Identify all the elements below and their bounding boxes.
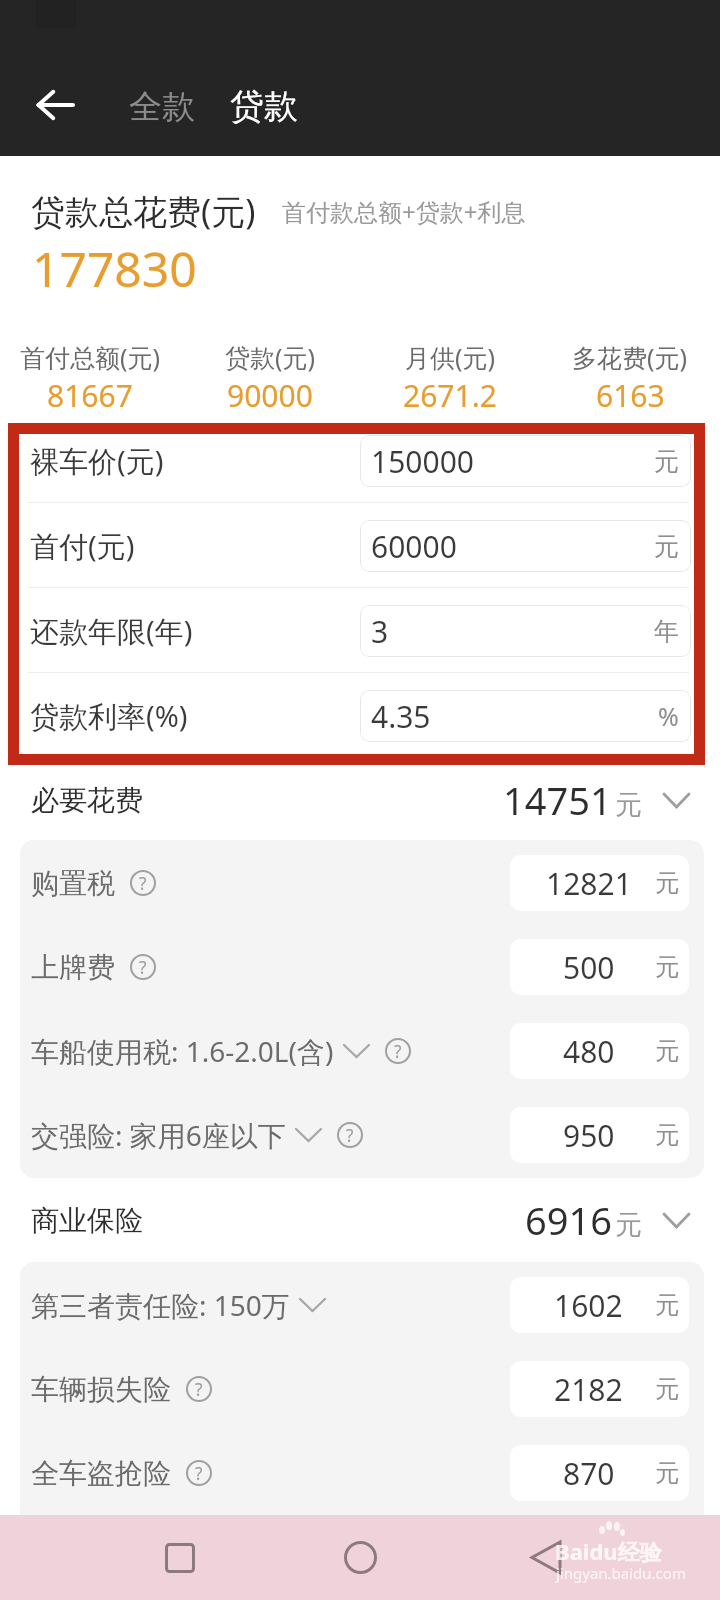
staticText: 首付(元) <box>30 526 135 566</box>
staticText: ? <box>394 1040 402 1063</box>
staticText: 1602 <box>554 1285 623 1326</box>
staticText: 870 <box>563 1453 615 1494</box>
button[interactable]: 950 <box>510 1107 689 1163</box>
staticText: 元 <box>655 1374 679 1404</box>
staticText: 12821 <box>546 863 632 904</box>
staticText: 2182 <box>554 1369 623 1410</box>
staticText: 元 <box>655 1036 679 1066</box>
staticText: 元 <box>655 868 679 898</box>
staticText: 贷款总花费(元) <box>31 188 256 234</box>
button[interactable]: Home <box>325 1515 395 1600</box>
staticText: 全款 <box>129 86 195 128</box>
button[interactable]: 1602 <box>510 1277 689 1333</box>
button[interactable]: 60000 <box>360 520 691 572</box>
staticText: 购置税 <box>31 866 115 901</box>
button[interactable]: 裸车价(元) <box>0 418 720 503</box>
button[interactable]: 第三者责任险: 150万 <box>20 1263 704 1347</box>
button[interactable]: 车船使用税: 1.6-2.0L(含) <box>20 1009 704 1093</box>
staticText: 元 <box>655 1458 679 1488</box>
button[interactable]: 贷款 <box>218 77 310 136</box>
staticText: 6916 <box>525 1194 612 1246</box>
button[interactable]: 购置税 <box>20 841 704 925</box>
staticText: ? <box>139 956 147 979</box>
staticText: ? <box>195 1462 203 1485</box>
button[interactable]: 必要花费 <box>0 758 720 842</box>
staticText: jingyan.baidu.com <box>556 1563 686 1583</box>
staticText: 60000 <box>371 526 457 567</box>
staticText: 贷款利率(%) <box>30 696 188 736</box>
button[interactable]: 贷款(元) <box>180 340 360 416</box>
staticText: 多花费(元) <box>572 340 688 374</box>
button[interactable]: Recents <box>145 1515 215 1600</box>
button[interactable]: 870 <box>510 1445 689 1501</box>
button[interactable]: 12821 <box>510 855 689 911</box>
button[interactable]: 500 <box>510 939 689 995</box>
staticText: 第三者责任险: 150万 <box>31 1286 290 1324</box>
staticText: 必要花费 <box>31 783 143 818</box>
staticText: 贷款 <box>230 85 298 128</box>
staticText: ? <box>195 1378 203 1401</box>
staticText: 14751 <box>503 774 612 826</box>
staticText: 交强险: 家用6座以下 <box>31 1116 286 1154</box>
staticText: 首付款总额+贷款+利息 <box>282 195 526 228</box>
button[interactable]: 2182 <box>510 1361 689 1417</box>
staticText: 全车盗抢险 <box>31 1456 171 1491</box>
button[interactable]: 150000 <box>360 435 691 487</box>
button[interactable]: 首付总额(元) <box>0 340 180 416</box>
staticText: 贷款(元) <box>225 340 316 374</box>
staticText: 元 <box>615 788 642 822</box>
staticText: 2671.2 <box>403 375 497 416</box>
button[interactable]: 3 <box>360 605 691 657</box>
staticText: ? <box>139 872 147 895</box>
button[interactable]: 首付(元) <box>0 503 720 588</box>
staticText: 81667 <box>47 375 133 416</box>
button[interactable]: 还款年限(年) <box>0 588 720 673</box>
button[interactable]: 商业保险 <box>0 1178 720 1262</box>
button[interactable]: 多花费(元) <box>540 340 720 416</box>
staticText: 元 <box>654 531 679 562</box>
button[interactable]: Back <box>20 70 90 140</box>
staticText: 商业保险 <box>31 1203 143 1238</box>
button[interactable]: 480 <box>510 1023 689 1079</box>
staticText: Baidu经验 <box>555 1536 662 1566</box>
staticText: 4.35 <box>371 696 431 737</box>
staticText: 177830 <box>32 236 197 301</box>
staticText: 150000 <box>371 441 474 482</box>
staticText: 950 <box>563 1115 615 1156</box>
staticText: 元 <box>615 1208 642 1242</box>
button[interactable]: 贷款利率(%) <box>0 673 720 758</box>
staticText: 元 <box>655 1290 679 1320</box>
button[interactable]: 车辆损失险 <box>20 1347 704 1431</box>
staticText: 上牌费 <box>31 950 115 985</box>
button[interactable]: 交强险: 家用6座以下 <box>20 1093 704 1177</box>
staticText: 元 <box>655 1120 679 1150</box>
staticText: 6163 <box>596 375 665 416</box>
staticText: 年 <box>654 616 679 647</box>
staticText: 3 <box>371 611 389 652</box>
staticText: 480 <box>563 1031 615 1072</box>
button[interactable]: 月供(元) <box>360 340 540 416</box>
staticText: 首付总额(元) <box>20 340 161 374</box>
button[interactable]: Back <box>511 1515 581 1600</box>
staticText: 车辆损失险 <box>31 1372 171 1407</box>
staticText: 月供(元) <box>405 340 496 374</box>
staticText: ? <box>346 1124 354 1147</box>
staticText: % <box>658 699 679 733</box>
staticText: 500 <box>563 947 615 988</box>
staticText: 还款年限(年) <box>30 611 193 651</box>
button[interactable]: 4.35 <box>360 690 691 742</box>
staticText: 元 <box>654 446 679 477</box>
staticText: 元 <box>655 952 679 982</box>
button[interactable]: 上牌费 <box>20 925 704 1009</box>
button[interactable]: 全车盗抢险 <box>20 1431 704 1515</box>
staticText: 裸车价(元) <box>30 441 164 481</box>
staticText: 90000 <box>227 375 313 416</box>
button[interactable]: 全款 <box>117 78 207 136</box>
staticText: 车船使用税: 1.6-2.0L(含) <box>31 1032 334 1070</box>
